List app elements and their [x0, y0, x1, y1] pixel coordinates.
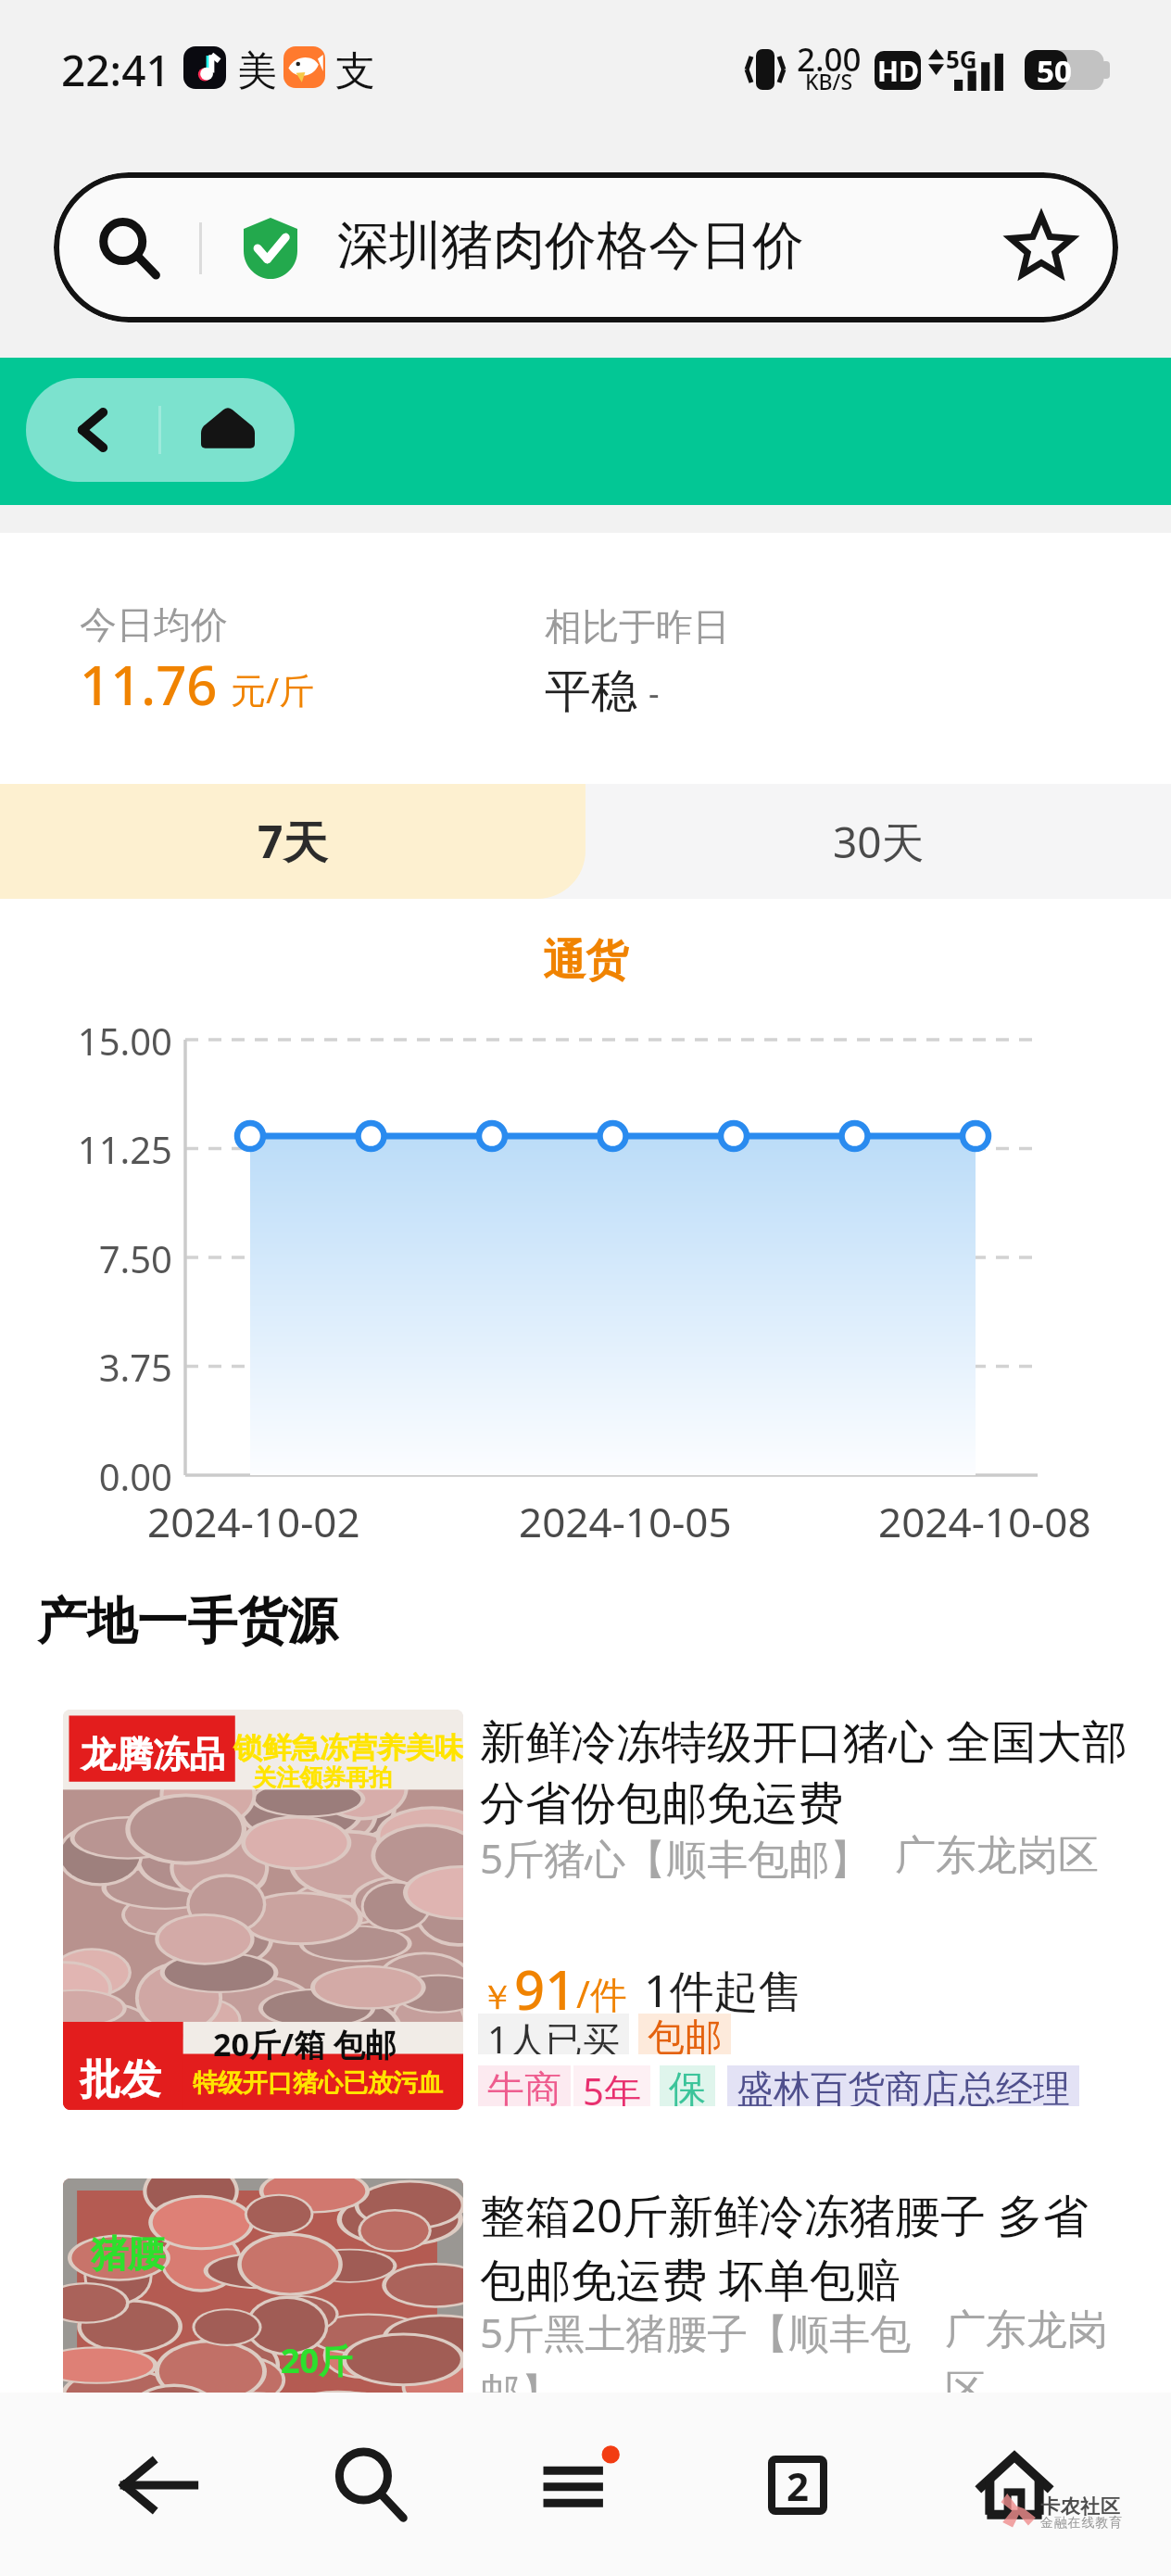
staticText: 相比于昨日	[545, 603, 730, 650]
staticText: 新鲜冷冻特级开口猪心 全国大部分省份包邮免运费	[480, 1710, 1161, 1833]
staticText: 保	[669, 2065, 706, 2106]
button[interactable]: 猪腰	[0, 2178, 1171, 2419]
staticText: 20斤	[281, 2338, 353, 2383]
staticText: KB/S	[805, 67, 853, 95]
staticText: 2024-10-02	[147, 1494, 360, 1549]
staticText: 2	[787, 2459, 810, 2512]
staticText: 5斤猪心【顺丰包邮】	[480, 1830, 871, 1886]
staticText: 产地一手货源	[37, 1590, 337, 1653]
staticText: 牛商	[487, 2065, 561, 2106]
staticText: 2.00	[797, 37, 862, 82]
button[interactable]: Back	[26, 378, 158, 482]
staticText: 锁鲜急冻营养美味	[233, 1730, 463, 1766]
staticText: 批发	[80, 2054, 161, 2105]
staticText: 91	[514, 1952, 576, 2026]
button[interactable]: Add to favourites	[995, 202, 1088, 295]
staticText: 金融在线教育	[1040, 2515, 1123, 2532]
staticText: 11.25	[77, 1124, 172, 1174]
button[interactable]: Menu	[502, 2406, 660, 2564]
staticText: 盛林百货商店总经理	[737, 2065, 1070, 2106]
button[interactable]: Home	[161, 378, 295, 482]
staticText: 特级开口猪心已放污血	[193, 2067, 443, 2099]
staticText: 2024-10-08	[878, 1494, 1091, 1549]
staticText: HD	[877, 52, 919, 90]
button[interactable]: Search	[292, 2406, 449, 2564]
staticText: 22:41	[61, 41, 170, 99]
staticText: 7.50	[98, 1233, 172, 1283]
staticText: 11.76	[80, 648, 218, 721]
staticText: 元/斤	[231, 665, 315, 713]
staticText: 猪腰	[91, 2230, 165, 2277]
staticText: 卡农社区	[1040, 2494, 1120, 2519]
staticText: 广东龙岗区	[895, 1830, 1099, 1881]
button[interactable]: 深圳猪肉价格今日价	[54, 172, 1118, 322]
staticText: 7天	[258, 811, 328, 872]
button[interactable]: 龙腾冻品	[0, 1710, 1171, 2117]
button[interactable]: 30天	[585, 784, 1171, 899]
staticText: 深圳猪肉价格今日价	[337, 213, 804, 279]
staticText: 0.00	[98, 1451, 172, 1501]
staticText: 平稳	[545, 663, 637, 721]
staticText: /件	[576, 1968, 627, 2019]
staticText: 15.00	[77, 1016, 172, 1066]
staticText: 3.75	[98, 1342, 172, 1392]
staticText: 2024-10-05	[519, 1494, 732, 1549]
staticText: -	[648, 670, 660, 715]
staticText: 20斤/箱 包邮	[213, 2023, 397, 2065]
button[interactable]: Back	[80, 2406, 237, 2564]
button[interactable]: Home	[936, 2406, 1093, 2564]
button[interactable]: 7天	[0, 784, 585, 899]
staticText: 5G	[946, 43, 977, 75]
staticText: 50	[1037, 50, 1072, 90]
staticText: 30天	[833, 813, 925, 871]
button[interactable]: Tabs	[719, 2406, 876, 2564]
staticText: 龙腾冻品	[81, 1732, 225, 1777]
staticText: 5斤黑土猪腰子【顺丰包邮】	[480, 2305, 923, 2419]
staticText: 1件起售	[644, 1960, 803, 2021]
staticText: 美	[237, 46, 277, 96]
staticText: 今日均价	[80, 601, 228, 648]
staticText: ￥	[480, 1976, 514, 2019]
staticText: 关注领券再拍	[253, 1763, 392, 1792]
staticText: 支	[335, 46, 375, 96]
staticText: 广东龙岗区	[945, 2305, 1121, 2416]
staticText: 通货	[543, 934, 628, 988]
staticText: 5年	[583, 2065, 641, 2106]
staticText: 包邮	[648, 2014, 722, 2054]
staticText: 整箱20斤新鲜冷冻猪腰子 多省包邮免运费 坏单包赔	[480, 2184, 1119, 2309]
staticText: 1人已买	[487, 2014, 620, 2054]
